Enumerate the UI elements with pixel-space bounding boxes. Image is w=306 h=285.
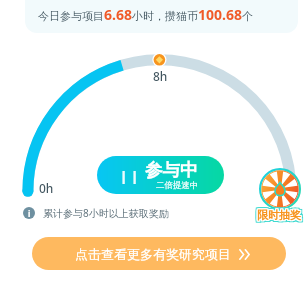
staticText: 限时抽奖 bbox=[259, 206, 303, 220]
staticText: 限时抽奖 bbox=[257, 207, 301, 221]
staticText: 限时抽奖 bbox=[255, 209, 299, 223]
staticText: 限时抽奖 bbox=[255, 208, 299, 222]
staticText: 限时抽奖 bbox=[255, 207, 299, 221]
staticText: 限时抽奖 bbox=[255, 206, 299, 220]
staticText: 限时抽奖 bbox=[259, 209, 303, 223]
staticText: i bbox=[28, 208, 31, 219]
staticText: 限时抽奖 bbox=[255, 210, 299, 224]
staticText: 限时抽奖 bbox=[258, 206, 302, 220]
staticText: 今日参与项目6.68小时，攒猫币100.68个 bbox=[38, 5, 253, 24]
staticText: 限时抽奖 bbox=[257, 210, 301, 224]
button[interactable]: 参与中 bbox=[97, 156, 224, 194]
staticText: 限时抽奖 bbox=[256, 210, 300, 224]
staticText: 二倍提速中 bbox=[156, 180, 199, 191]
staticText: 限时抽奖 bbox=[256, 206, 300, 220]
staticText: 限时抽奖 bbox=[258, 208, 302, 222]
staticText: 限时抽奖 bbox=[258, 210, 302, 224]
button[interactable]: 限时抽奖 bbox=[257, 208, 301, 222]
staticText: 限时抽奖 bbox=[258, 209, 302, 223]
staticText: 限时抽奖 bbox=[257, 208, 301, 222]
button[interactable]: i bbox=[23, 206, 169, 220]
staticText: 0h bbox=[39, 180, 54, 196]
staticText: 限时抽奖 bbox=[256, 207, 300, 221]
staticText: 限时抽奖 bbox=[257, 206, 301, 220]
staticText: 限时抽奖 bbox=[259, 207, 303, 221]
staticText: 限时抽奖 bbox=[259, 208, 303, 222]
button[interactable]: 限时抽奖 bbox=[258, 167, 302, 211]
staticText: 8h bbox=[153, 68, 168, 84]
button[interactable]: 点击查看更多有奖研究项目 bbox=[32, 237, 286, 270]
staticText: 限时抽奖 bbox=[256, 208, 300, 222]
staticText: 限时抽奖 bbox=[258, 207, 302, 221]
staticText: 限时抽奖 bbox=[257, 209, 301, 223]
staticText: 点击查看更多有奖研究项目 bbox=[75, 246, 231, 262]
staticText: 累计参与8小时以上获取奖励 bbox=[43, 206, 169, 220]
staticText: 限时抽奖 bbox=[256, 209, 300, 223]
staticText: 限时抽奖 bbox=[259, 210, 303, 224]
staticText: 参与中 bbox=[145, 159, 198, 181]
